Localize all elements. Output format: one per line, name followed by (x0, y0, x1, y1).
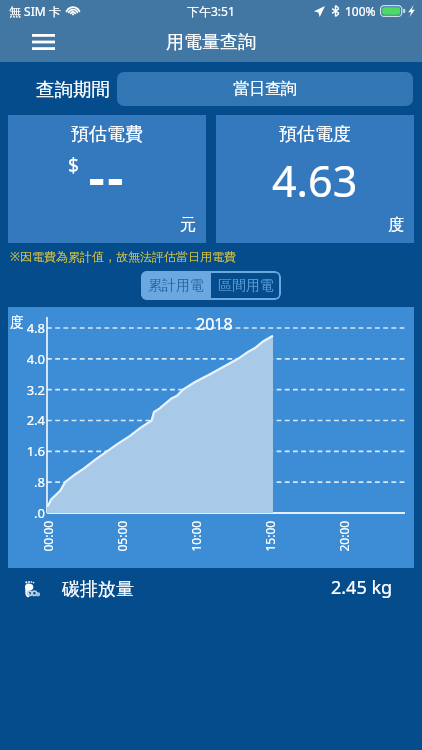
button[interactable]: 預估電費 (8, 115, 206, 243)
staticText: 2.4 (13, 411, 45, 429)
button[interactable]: Menu (20, 25, 66, 59)
staticText: 100% (345, 3, 376, 19)
staticText: 度 (10, 314, 24, 332)
staticText: 15:00 (261, 520, 277, 551)
staticText: 10:00 (187, 520, 203, 551)
staticText: 2.45 kg (331, 575, 393, 600)
staticText: 下午3:51 (187, 3, 235, 19)
staticText: .8 (13, 473, 45, 491)
staticText: ※因電費為累計值，故無法評估當日用電費 (10, 248, 237, 264)
staticText: 當日查詢 (233, 79, 297, 99)
staticText: 3.2 (13, 381, 45, 399)
staticText: 4.8 (13, 319, 45, 337)
staticText: 查詢期間 (36, 78, 110, 101)
button[interactable]: Carbon footprint (0, 572, 422, 606)
staticText: 4.63 (272, 151, 358, 210)
button[interactable]: 累計用電 (141, 271, 211, 300)
staticText: 20:00 (335, 520, 351, 551)
staticText: .0 (13, 504, 45, 522)
staticText: 累計用電 (148, 277, 204, 295)
button[interactable]: 當日查詢 (117, 72, 413, 106)
staticText: 00:00 (39, 520, 55, 551)
staticText: 預估電度 (279, 123, 351, 146)
staticText: 1.6 (13, 442, 45, 460)
staticText: $ (68, 152, 79, 178)
staticText: 用電量查詢 (166, 31, 256, 54)
staticText: 碳排放量 (62, 578, 134, 601)
staticText: 05:00 (113, 520, 129, 551)
staticText: 元 (180, 215, 196, 235)
staticText: 4.0 (13, 350, 45, 368)
button[interactable]: 預估電度 (216, 115, 414, 243)
staticText: 度 (388, 215, 404, 235)
staticText: 預估電費 (71, 123, 143, 146)
staticText: 2018 (196, 313, 233, 335)
button[interactable]: 區間用電 (211, 271, 281, 300)
other: Carbon footprint (24, 581, 37, 598)
staticText: 區間用電 (218, 277, 274, 295)
staticText: 無 SIM 卡 (9, 3, 61, 19)
